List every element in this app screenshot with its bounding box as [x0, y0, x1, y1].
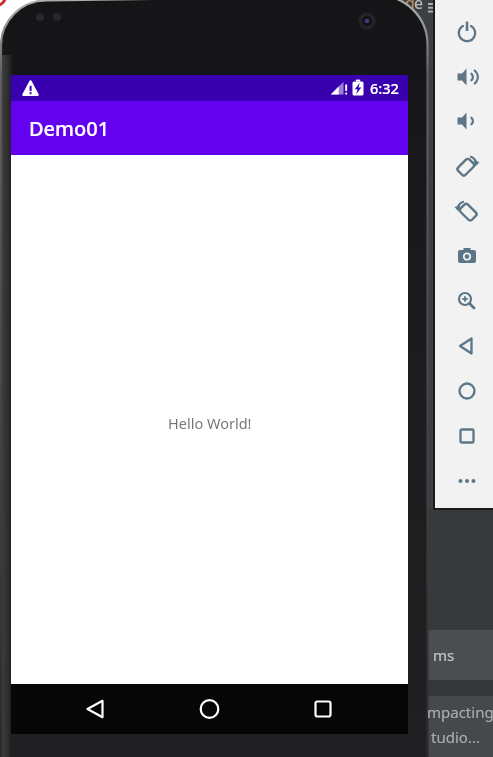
staticText: Demo01 [29, 115, 110, 142]
button[interactable] [71, 688, 119, 730]
button[interactable] [444, 144, 489, 188]
button[interactable] [444, 369, 489, 413]
staticText: e [414, 0, 424, 14]
staticText: tudio... [431, 727, 480, 747]
button[interactable] [444, 10, 489, 54]
button[interactable] [185, 688, 233, 730]
button[interactable] [299, 688, 347, 730]
staticText: Hello World! [168, 413, 252, 433]
button[interactable] [444, 414, 489, 458]
button[interactable] [444, 459, 489, 503]
button[interactable] [444, 324, 489, 368]
button[interactable] [444, 189, 489, 233]
button[interactable] [444, 279, 489, 323]
button[interactable] [444, 99, 489, 143]
staticText: 6:32 [370, 78, 399, 98]
staticText: mpacting [427, 702, 493, 722]
button[interactable] [444, 55, 489, 99]
button[interactable] [444, 234, 489, 278]
staticText: ms [433, 645, 455, 665]
staticText: d [405, 0, 415, 14]
